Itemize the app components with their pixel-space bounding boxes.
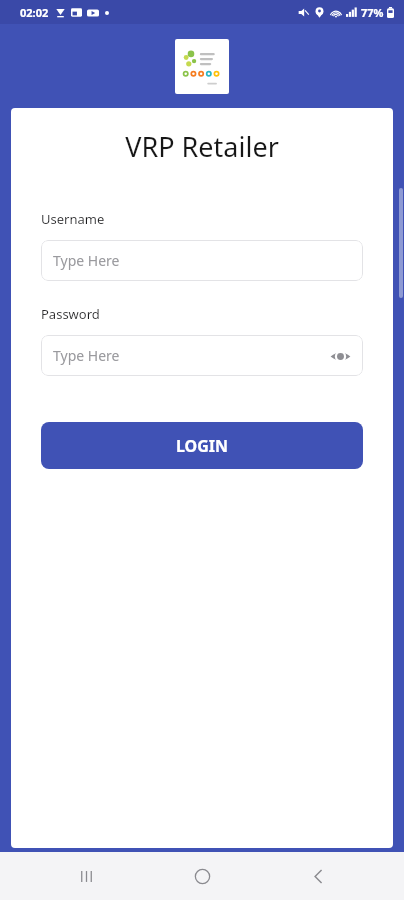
- button[interactable]: Recent apps: [56, 852, 116, 900]
- staticText: Password: [41, 305, 100, 323]
- staticText: Type Here: [53, 346, 120, 365]
- button[interactable]: Type Here: [41, 240, 363, 281]
- button[interactable]: LOGIN: [41, 422, 363, 469]
- staticText: 77%: [361, 5, 384, 20]
- button[interactable]: Back: [288, 852, 348, 900]
- staticText: 02:02: [20, 5, 49, 20]
- staticText: LOGIN: [176, 435, 229, 457]
- staticText: VRP Retailer: [41, 128, 363, 165]
- button[interactable]: Home: [172, 852, 232, 900]
- staticText: Type Here: [53, 251, 120, 270]
- button[interactable]: Type Here: [41, 335, 363, 376]
- button[interactable]: Show password: [327, 343, 353, 369]
- staticText: Username: [41, 210, 105, 228]
